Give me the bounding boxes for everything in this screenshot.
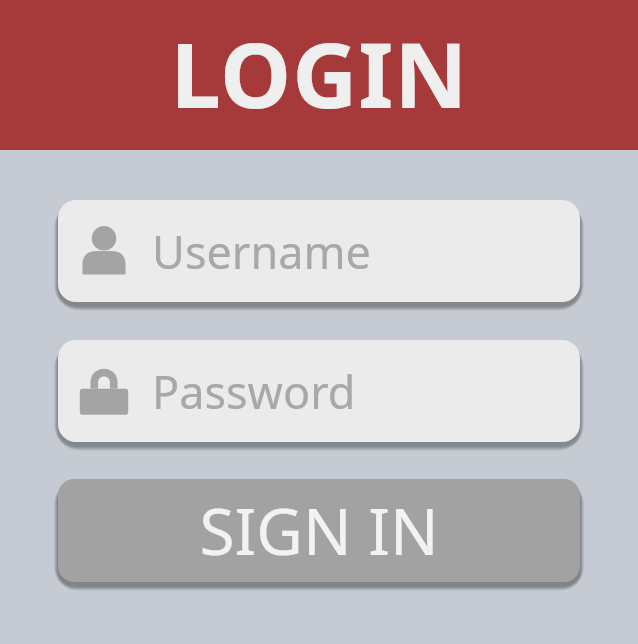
button[interactable]: Password	[58, 340, 580, 442]
staticText: Username	[152, 221, 371, 282]
button[interactable]: Username	[58, 200, 580, 302]
button[interactable]: SIGN IN	[58, 479, 580, 582]
staticText: Password	[152, 361, 356, 422]
staticText: LOGIN	[170, 12, 469, 135]
staticText: SIGN IN	[199, 487, 439, 574]
